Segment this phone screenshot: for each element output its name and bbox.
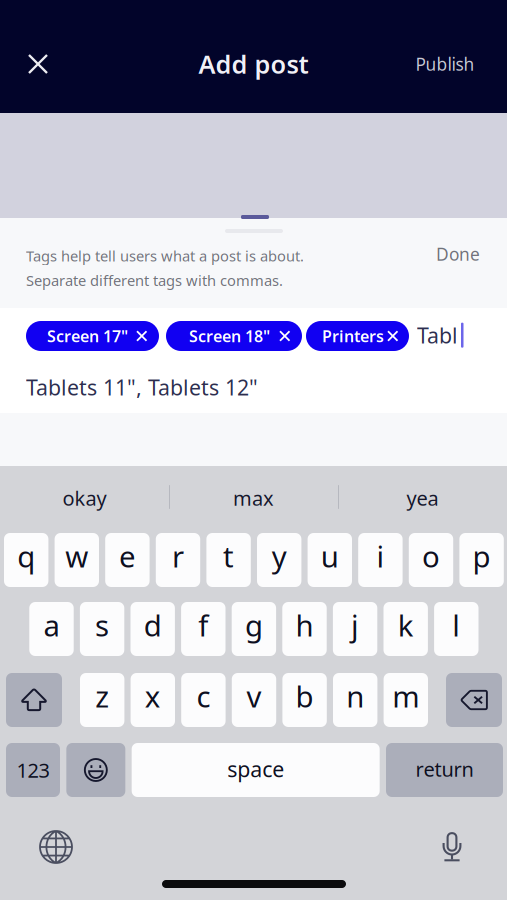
staticText: j [351, 605, 359, 644]
staticText: w [65, 536, 88, 575]
button[interactable]: Screen 17" [26, 321, 159, 351]
staticText: max [233, 485, 274, 511]
staticText: Separate different tags with commas. [26, 270, 283, 290]
staticText: Done [436, 242, 480, 265]
button[interactable]: z [80, 673, 124, 727]
button[interactable]: space [132, 743, 380, 797]
button[interactable]: s [80, 602, 124, 656]
button[interactable]: Dictation [429, 824, 475, 870]
button[interactable]: i [358, 533, 403, 587]
button[interactable]: Printers [306, 321, 409, 351]
button[interactable]: r [156, 533, 200, 587]
button[interactable]: Numbers [6, 743, 60, 797]
staticText: n [346, 676, 364, 715]
button[interactable]: Shift [6, 673, 62, 727]
staticText: e [119, 536, 136, 575]
button[interactable]: Publish [399, 41, 491, 87]
staticText: space [227, 755, 284, 783]
staticText: Printers [322, 325, 384, 347]
staticText: v [246, 676, 261, 715]
staticText: s [95, 605, 109, 644]
button[interactable]: c [181, 673, 226, 727]
staticText: p [473, 536, 491, 575]
staticText: Screen 18" [189, 325, 270, 347]
staticText: k [398, 605, 414, 644]
staticText: Tablets 11", Tablets 12" [26, 373, 258, 401]
staticText: m [392, 676, 419, 715]
button[interactable]: m [384, 673, 428, 727]
button[interactable]: t [206, 533, 251, 587]
button[interactable]: yea [338, 470, 507, 526]
staticText: r [172, 536, 184, 575]
staticText: return [415, 756, 473, 782]
staticText: y [272, 536, 287, 575]
staticText: Tabl [417, 321, 458, 349]
staticText: yea [406, 485, 438, 511]
button[interactable]: y [257, 533, 301, 587]
staticText: z [95, 676, 109, 715]
button[interactable]: d [130, 602, 175, 656]
staticText: t [223, 536, 234, 575]
staticText: okay [62, 485, 106, 511]
button[interactable]: g [232, 602, 276, 656]
button[interactable]: Emoji [66, 743, 125, 797]
button[interactable]: Screen 18" [166, 321, 302, 351]
button[interactable]: o [409, 533, 453, 587]
button[interactable]: Close [14, 41, 62, 87]
staticText: d [144, 605, 162, 644]
button[interactable]: Done [423, 237, 493, 271]
button[interactable]: v [232, 673, 276, 727]
button[interactable]: l [434, 602, 478, 656]
staticText: x [145, 676, 161, 715]
button[interactable]: e [105, 533, 150, 587]
staticText: q [17, 536, 35, 575]
button[interactable]: j [333, 602, 377, 656]
staticText: 123 [16, 757, 49, 783]
button[interactable]: n [333, 673, 377, 727]
button[interactable]: x [131, 673, 175, 727]
button[interactable]: b [282, 673, 327, 727]
button[interactable]: u [308, 533, 352, 587]
staticText: f [198, 605, 208, 644]
button[interactable]: max [169, 470, 338, 526]
button[interactable]: a [29, 602, 74, 656]
staticText: Publish [415, 52, 474, 75]
button[interactable]: Next keyboard [33, 824, 79, 870]
button[interactable]: okay [0, 470, 169, 526]
staticText: Tags help tell users what a post is abou… [26, 246, 304, 265]
staticText: Screen 17" [47, 325, 128, 347]
staticText: h [295, 605, 313, 644]
staticText: Add post [198, 47, 308, 81]
button[interactable]: p [459, 533, 504, 587]
staticText: i [376, 536, 384, 575]
button[interactable]: q [4, 533, 48, 587]
staticText: u [321, 536, 339, 575]
button[interactable]: w [55, 533, 99, 587]
button[interactable]: h [282, 602, 327, 656]
button[interactable]: f [181, 602, 225, 656]
staticText: l [452, 605, 460, 644]
button[interactable]: k [383, 602, 428, 656]
staticText: o [422, 536, 440, 575]
staticText: c [196, 676, 210, 715]
button[interactable]: Delete [446, 673, 502, 727]
staticText: g [245, 605, 263, 644]
staticText: a [43, 605, 59, 644]
button[interactable]: return [386, 743, 503, 797]
staticText: b [296, 676, 314, 715]
